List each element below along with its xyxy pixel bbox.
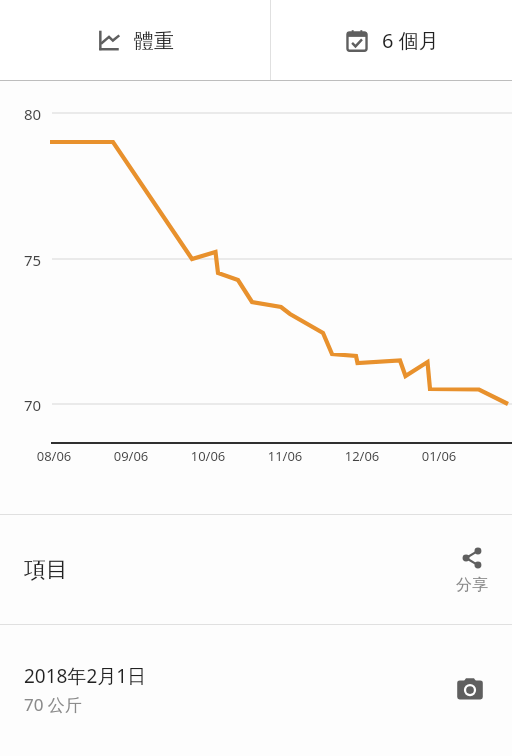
staticText: 08/06 — [30, 447, 78, 465]
button[interactable]: 6 個月 — [271, 0, 512, 81]
staticText: 體重 — [134, 29, 174, 54]
staticText: 75 — [24, 250, 42, 270]
staticText: 分享 — [456, 575, 488, 595]
staticText: 項目 — [24, 556, 68, 584]
button[interactable]: 2018年2月1日 — [0, 625, 512, 753]
staticText: 11/06 — [261, 447, 309, 465]
staticText: 09/06 — [107, 447, 155, 465]
staticText: 70 公斤 — [24, 693, 82, 716]
staticText: 2018年2月1日 — [24, 663, 147, 689]
staticText: 12/06 — [338, 447, 386, 465]
button[interactable]: Camera — [450, 669, 490, 709]
button[interactable]: 分享 — [440, 545, 504, 595]
staticText: 70 — [24, 395, 42, 415]
staticText: 6 個月 — [382, 27, 439, 54]
staticText: 01/06 — [415, 447, 463, 465]
staticText: 10/06 — [184, 447, 232, 465]
button[interactable]: 體重 — [0, 0, 270, 81]
staticText: 80 — [24, 104, 42, 124]
